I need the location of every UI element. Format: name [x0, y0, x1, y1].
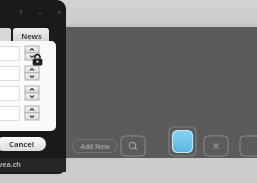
staticText: × — [57, 7, 62, 17]
staticText: Add New — [80, 142, 110, 151]
button[interactable]: Window control — [16, 7, 26, 17]
button[interactable]: Window control — [54, 7, 64, 17]
button[interactable] — [0, 28, 11, 42]
button[interactable]: Increase — [25, 46, 39, 53]
button[interactable]: Close — [204, 136, 228, 156]
button[interactable]: Decrease — [25, 53, 39, 60]
button[interactable]: Window control — [35, 7, 45, 17]
button[interactable]: Decrease — [25, 113, 39, 120]
staticText: Cancel — [9, 139, 34, 149]
button[interactable]: Increase — [25, 106, 39, 113]
staticText: News — [21, 31, 42, 41]
button[interactable]: Increase — [25, 66, 39, 73]
button[interactable]: 0 — [0, 66, 20, 81]
button[interactable]: Add New — [72, 139, 117, 153]
staticText: – — [38, 7, 42, 17]
button[interactable]: Decrease — [25, 93, 39, 100]
button[interactable]: Selected tool — [169, 127, 196, 156]
staticText: ilvea.ch — [0, 160, 21, 170]
button[interactable]: News — [13, 28, 49, 43]
button[interactable] — [0, 106, 20, 121]
button[interactable]: Increase — [25, 86, 39, 93]
button[interactable] — [0, 86, 20, 101]
button[interactable]: 0 — [0, 46, 20, 61]
staticText: ? — [19, 7, 23, 17]
button[interactable]: Cancel — [0, 137, 46, 151]
button[interactable]: Search — [121, 136, 145, 156]
button[interactable]: Decrease — [25, 73, 39, 80]
